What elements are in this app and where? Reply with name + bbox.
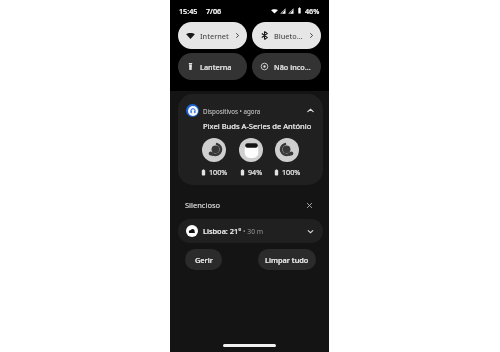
button[interactable]: Internet xyxy=(178,22,247,49)
staticText: Silencioso xyxy=(185,200,221,210)
staticText: Gerir xyxy=(195,255,213,265)
staticText: 15:45 xyxy=(179,6,198,16)
button[interactable]: Limpar tudo xyxy=(258,249,316,270)
staticText: • 30 m xyxy=(243,227,264,236)
staticText: Não inco… xyxy=(274,62,311,72)
staticText: Blueto… xyxy=(274,31,303,41)
staticText: 100% xyxy=(209,167,228,177)
button[interactable]: Dispositivos • agora xyxy=(178,94,323,185)
staticText: Limpar tudo xyxy=(265,255,309,265)
staticText: 7/06 xyxy=(206,6,222,16)
button[interactable]: Lanterna xyxy=(178,53,247,80)
button[interactable]: Blueto… xyxy=(252,22,321,49)
button[interactable]: Recolher xyxy=(304,104,317,117)
staticText: 94% xyxy=(248,167,263,177)
button[interactable]: Fechar xyxy=(303,199,315,211)
button[interactable]: Não inco… xyxy=(252,53,321,80)
button[interactable]: Gerir xyxy=(185,249,222,270)
staticText: Lisboa: 21° xyxy=(203,226,242,236)
staticText: Lanterna xyxy=(200,62,232,72)
button[interactable]: Lisboa: 21° xyxy=(178,219,323,243)
staticText: 100% xyxy=(282,167,301,177)
staticText: Dispositivos • agora xyxy=(203,107,261,115)
staticText: 46% xyxy=(305,6,320,16)
staticText: Pixel Buds A-Series de António xyxy=(203,121,312,131)
staticText: Internet xyxy=(200,31,229,41)
